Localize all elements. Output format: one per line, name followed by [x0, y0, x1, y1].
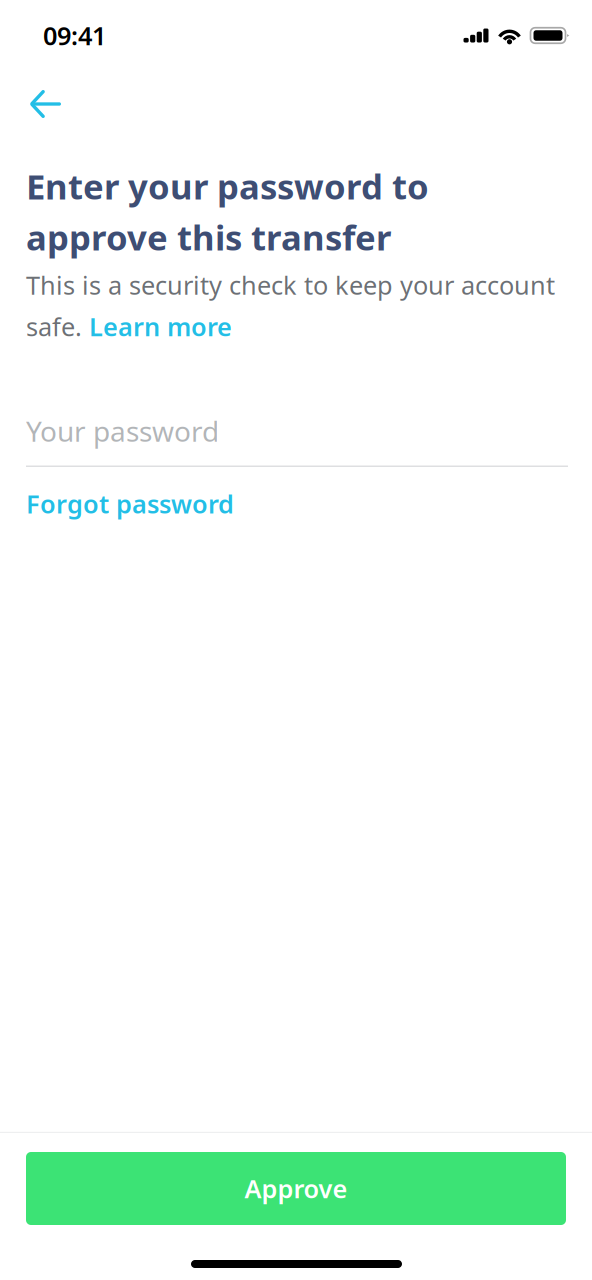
button[interactable]: Forgot password	[26, 477, 234, 530]
button[interactable]: Learn more	[89, 310, 232, 343]
staticText: Forgot password	[26, 487, 234, 520]
staticText: Enter your password to	[26, 163, 429, 209]
staticText: Your password	[26, 412, 219, 450]
button[interactable]: Approve	[26, 1152, 566, 1225]
staticText: Approve	[244, 1172, 347, 1205]
staticText: safe.	[26, 310, 89, 343]
staticText: Learn more	[89, 310, 232, 343]
button[interactable]: Back	[9, 76, 83, 132]
staticText: approve this transfer	[26, 214, 391, 260]
staticText: 09:41	[43, 19, 106, 52]
staticText: This is a security check to keep your ac…	[26, 268, 555, 302]
